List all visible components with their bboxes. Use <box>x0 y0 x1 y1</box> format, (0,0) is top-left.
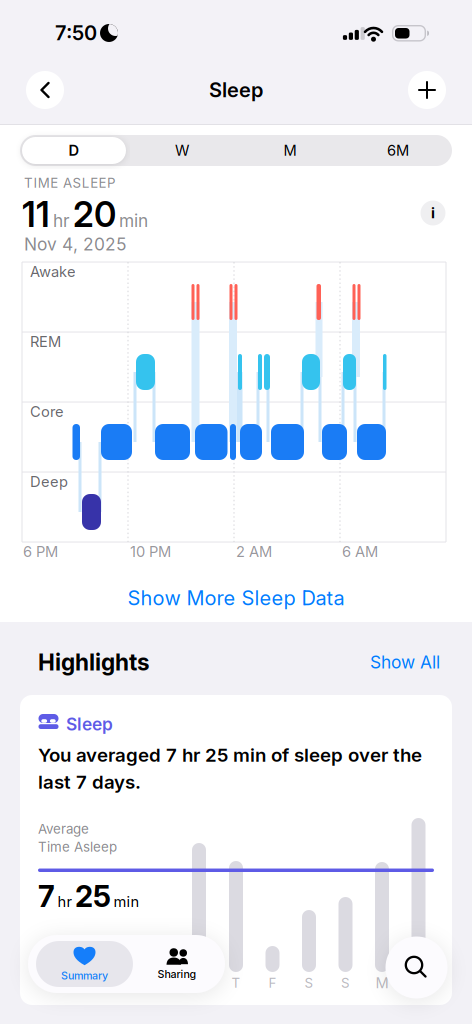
button[interactable]: M <box>236 135 344 166</box>
staticText: 7:50 <box>55 21 97 45</box>
button[interactable]: Sharing <box>134 941 220 987</box>
staticText: 20 <box>73 194 116 235</box>
staticText: last 7 days. <box>38 771 141 793</box>
button[interactable]: Search <box>385 936 447 998</box>
staticText: You averaged 7 hr 25 min of sleep over t… <box>38 744 422 766</box>
staticText: Nov 4, 2025 <box>24 234 127 254</box>
button[interactable]: Sleep <box>20 695 452 1005</box>
staticText: REM <box>30 333 61 350</box>
staticText: min <box>113 893 139 910</box>
staticText: Show More Sleep Data <box>127 586 344 610</box>
staticText: Average <box>38 821 89 837</box>
staticText: Highlights <box>38 649 150 676</box>
staticText: Core <box>30 403 64 420</box>
staticText: i <box>431 204 435 222</box>
staticText: D <box>68 142 79 159</box>
staticText: S <box>304 975 313 991</box>
staticText: Deep <box>30 473 68 490</box>
staticText: M <box>375 974 388 992</box>
staticText: 7 <box>38 879 55 914</box>
button[interactable]: W <box>128 135 236 166</box>
button[interactable]: 6M <box>344 135 452 166</box>
staticText: Sharing <box>157 968 196 980</box>
staticText: Time Asleep <box>38 839 117 855</box>
button[interactable]: Show More Sleep Data <box>0 583 472 613</box>
staticText: 6 AM <box>342 543 378 560</box>
staticText: Summary <box>61 969 108 982</box>
staticText: TIME ASLEEP <box>24 175 116 191</box>
staticText: Sleep <box>209 78 263 102</box>
staticText: 6M <box>387 142 409 159</box>
staticText: 2 AM <box>236 543 272 560</box>
staticText: min <box>119 210 148 231</box>
staticText: 6 PM <box>23 543 58 560</box>
staticText: Sleep <box>66 714 113 734</box>
button[interactable]: D <box>20 135 128 166</box>
staticText: M <box>283 142 296 159</box>
staticText: T <box>231 975 240 991</box>
staticText: 11 <box>22 194 50 235</box>
staticText: hr <box>57 893 72 910</box>
button[interactable]: About Time Asleep <box>420 200 445 225</box>
staticText: 25 <box>75 879 111 914</box>
staticText: 10 PM <box>130 543 171 560</box>
button[interactable]: Add <box>408 71 446 109</box>
button[interactable]: Show All <box>370 652 440 672</box>
staticText: Awake <box>30 263 76 280</box>
staticText: W <box>175 142 189 159</box>
staticText: hr <box>53 210 70 231</box>
staticText: F <box>268 975 276 991</box>
staticText: S <box>341 975 350 991</box>
button[interactable]: Back <box>26 71 64 109</box>
staticText: Show All <box>370 652 440 672</box>
button[interactable]: Summary <box>36 941 133 987</box>
